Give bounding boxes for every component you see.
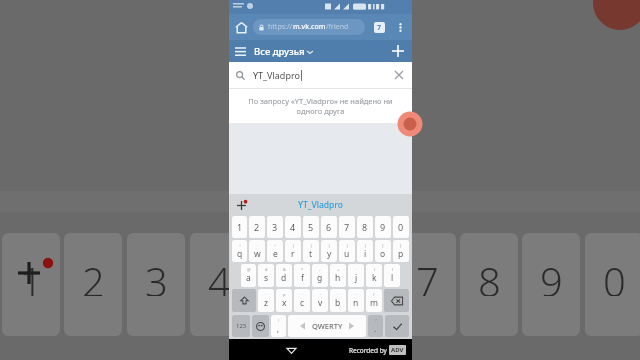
button[interactable]: ( <box>366 264 382 287</box>
button[interactable]: · <box>348 264 364 287</box>
button[interactable]: 7 <box>339 216 355 238</box>
button[interactable]: · <box>348 289 364 312</box>
button[interactable]: More options <box>390 17 410 37</box>
button[interactable]: Shift <box>232 289 256 312</box>
button[interactable]: 8 <box>357 216 373 238</box>
staticText: ADV <box>391 346 404 354</box>
button[interactable]: · <box>249 240 265 262</box>
staticText: 2 <box>254 221 260 233</box>
button[interactable]: # <box>258 264 274 287</box>
staticText: g <box>317 272 323 284</box>
button[interactable]: 3 <box>267 216 283 238</box>
staticText: m.vk.com <box>293 22 326 32</box>
staticText: Recorded by <box>349 346 389 355</box>
button[interactable]: https:// <box>253 19 365 35</box>
staticText: p <box>283 292 286 297</box>
staticText: l <box>391 272 394 284</box>
button[interactable]: · <box>330 289 346 312</box>
button[interactable]: Search <box>385 315 409 337</box>
button[interactable]: 1 <box>232 216 247 238</box>
button[interactable]: + <box>330 264 346 287</box>
button[interactable]: YT_Vladpro <box>229 194 412 215</box>
staticText: m <box>370 297 378 309</box>
button[interactable]: YT_Vladpro <box>229 62 412 88</box>
button[interactable]: 6 <box>321 216 337 238</box>
staticText: · <box>257 243 259 248</box>
staticText: 7 <box>344 221 350 233</box>
button[interactable]: Tabs <box>368 16 390 38</box>
staticText: v <box>318 297 323 309</box>
button[interactable]: Space <box>288 315 366 337</box>
staticText: 8 <box>362 221 368 233</box>
button[interactable]: p <box>276 289 292 312</box>
staticText: i <box>364 248 367 260</box>
staticText: По запросу «YT_Vladpro» не найдено ни од… <box>243 96 398 116</box>
staticText: / <box>373 292 375 297</box>
button[interactable]: / <box>366 289 382 312</box>
button[interactable]: 9 <box>375 216 391 238</box>
button[interactable]: ? <box>368 315 383 337</box>
button[interactable]: Все друзья <box>254 45 313 58</box>
staticText: ? <box>375 318 377 323</box>
button[interactable]: ~ <box>232 240 247 262</box>
button[interactable]: @ <box>241 264 256 287</box>
button[interactable]: · <box>312 289 328 312</box>
button[interactable]: { <box>375 240 391 262</box>
staticText: { <box>382 243 384 248</box>
staticText: & <box>283 267 286 272</box>
button[interactable]: Menu <box>229 40 251 62</box>
button[interactable]: ~ <box>267 240 283 262</box>
button[interactable]: · <box>294 289 310 312</box>
staticText: 4 <box>208 254 231 296</box>
button[interactable]: 2 <box>249 216 265 238</box>
staticText: q <box>237 248 243 260</box>
button[interactable]: ! <box>271 315 286 337</box>
staticText: c <box>300 297 305 309</box>
staticText: # <box>265 267 268 272</box>
button[interactable]: 5 <box>303 216 319 238</box>
button[interactable]: - <box>312 264 328 287</box>
button[interactable]: Clear <box>388 64 410 86</box>
button[interactable]: | <box>339 240 355 262</box>
staticText: @ <box>247 267 251 272</box>
staticText: 0 <box>603 254 626 296</box>
button[interactable]: Add friend <box>386 40 410 62</box>
staticText: f <box>301 272 304 284</box>
staticText: x <box>282 297 287 309</box>
button[interactable]: Add word <box>231 195 251 215</box>
button[interactable]: 4 <box>285 216 301 238</box>
staticText: ( <box>374 267 376 272</box>
button[interactable]: 0 <box>393 216 409 238</box>
staticText: ) <box>392 267 394 272</box>
staticText: /friend <box>326 22 349 32</box>
button[interactable]: } <box>393 240 409 262</box>
button[interactable]: & <box>276 264 292 287</box>
button[interactable]: Home <box>229 15 253 39</box>
staticText: · <box>265 292 267 297</box>
button[interactable]: ) <box>384 264 400 287</box>
staticText: - <box>319 267 321 272</box>
staticText: · <box>337 292 339 297</box>
staticText: 9 <box>380 221 386 233</box>
button[interactable]: Emoji <box>252 315 269 337</box>
button[interactable]: 123 <box>232 315 250 337</box>
staticText: 8 <box>478 254 501 296</box>
staticText: , <box>277 323 280 334</box>
staticText: b <box>335 297 341 309</box>
staticText: 7 <box>377 23 382 33</box>
button[interactable]: | <box>285 240 301 262</box>
button[interactable]: Back <box>281 340 301 360</box>
button[interactable]: * <box>294 264 310 287</box>
staticText: n <box>353 297 359 309</box>
button[interactable]: Backspace <box>384 289 409 312</box>
staticText: 3 <box>272 221 278 233</box>
staticText: | <box>346 243 349 248</box>
button[interactable]: | <box>357 240 373 262</box>
button[interactable]: | <box>321 240 337 262</box>
staticText: r <box>291 248 295 260</box>
button[interactable]: · <box>258 289 274 312</box>
staticText: k <box>372 272 377 284</box>
staticText: 1 <box>237 221 243 233</box>
button[interactable]: | <box>303 240 319 262</box>
staticText: 4 <box>290 221 296 233</box>
